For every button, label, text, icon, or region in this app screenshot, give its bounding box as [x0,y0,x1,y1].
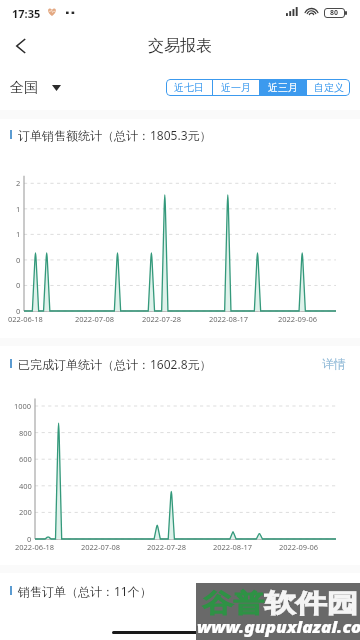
staticText: 2 [16,178,21,188]
staticText: 交易报表 [148,36,212,56]
staticText: 详情 [322,356,346,371]
button[interactable]: 全国 [10,79,61,97]
staticText: 2022-08-17 [213,542,253,551]
button[interactable]: Back [4,26,38,66]
staticText: 2022-07-08 [81,542,121,551]
staticText: 2022-07-08 [75,314,115,323]
staticText: 软件园 [264,588,358,620]
staticText: 1000 [14,401,32,411]
staticText: 2022-07-28 [142,314,182,323]
staticText: 0 [16,280,21,290]
staticText: 0 [16,306,21,316]
staticText: 近一月 [221,81,251,94]
staticText: 近三月 [268,81,298,94]
staticText: 0 [27,534,32,544]
staticText: 2022-07-28 [147,542,187,551]
staticText: 1 [16,204,21,214]
staticText: 已完成订单统计（总计：1602.8元） [18,356,212,372]
staticText: 全国 [10,79,38,97]
button[interactable]: 近一月 [213,79,259,96]
staticText: 200 [19,507,32,517]
button[interactable]: 详情 [320,356,348,371]
staticText: 600 [19,454,32,464]
button[interactable]: 近七日 [166,79,212,96]
staticText: 2022-09-06 [278,314,318,323]
staticText: 17:35 [12,6,41,21]
staticText: 订单销售额统计（总计：1805.3元） [18,127,212,143]
staticText: 2022-06-18 [15,542,55,551]
button[interactable]: 近三月 [260,79,306,96]
staticText: 022-06-18 [8,314,43,323]
staticText: 80 [330,8,339,18]
staticText: 1 [16,229,21,239]
staticText: 400 [19,481,32,491]
staticText: www.gupuxlazal.com [197,616,360,640]
button[interactable]: 自定义 [307,79,350,96]
staticText: 近七日 [174,81,204,94]
staticText: 0 [16,255,21,265]
staticText: 800 [19,428,32,438]
staticText: 销售订单（总计：11个） [18,583,152,599]
staticText: 2022-08-17 [209,314,249,323]
staticText: 自定义 [314,81,344,94]
staticText: 谷普 [202,588,264,620]
staticText: 2022-09-06 [279,542,319,551]
